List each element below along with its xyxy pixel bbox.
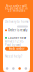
staticText: Courier near (8, 36, 26, 40)
staticText: Track order (8, 47, 24, 50)
staticText: Your order will (6, 4, 27, 8)
staticText: Paid by card (5, 43, 21, 47)
staticText: Arrives 12:45 (5, 40, 24, 43)
staticText: Need help? (5, 55, 22, 58)
button[interactable]: Home (4, 67, 10, 70)
staticText: 25 minutes (8, 9, 25, 12)
button[interactable]: Search (10, 67, 16, 70)
button[interactable]: Profile (23, 67, 29, 70)
button[interactable]: Track order (5, 47, 28, 51)
staticText: Order is ready (8, 28, 27, 32)
button[interactable]: Orders (16, 67, 23, 70)
staticText: Delivery to home (5, 20, 29, 23)
staticText: be delivered in (5, 7, 28, 10)
